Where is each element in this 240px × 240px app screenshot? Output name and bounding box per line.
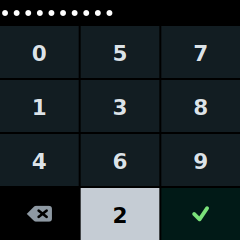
staticText: 1 — [32, 95, 47, 120]
staticText: 7 — [193, 41, 208, 66]
button[interactable]: 0 — [0, 26, 79, 78]
button[interactable]: 7 — [161, 26, 240, 78]
staticText: 3 — [112, 95, 127, 120]
button[interactable]: Delete — [0, 188, 79, 240]
staticText: 8 — [193, 95, 208, 120]
button[interactable]: 3 — [81, 80, 159, 132]
staticText: 6 — [112, 149, 127, 174]
button[interactable]: Confirm — [161, 188, 240, 240]
button[interactable]: 9 — [161, 134, 240, 186]
staticText: 2 — [112, 203, 127, 228]
button[interactable]: 4 — [0, 134, 79, 186]
staticText: 0 — [32, 41, 47, 66]
button[interactable]: 6 — [81, 134, 159, 186]
button[interactable]: 2 — [81, 188, 159, 240]
staticText: 5 — [112, 41, 127, 66]
button[interactable]: 1 — [0, 80, 79, 132]
button[interactable]: 5 — [81, 26, 159, 78]
staticText: 4 — [32, 149, 47, 174]
staticText: 9 — [193, 149, 208, 174]
button[interactable]: 8 — [161, 80, 240, 132]
